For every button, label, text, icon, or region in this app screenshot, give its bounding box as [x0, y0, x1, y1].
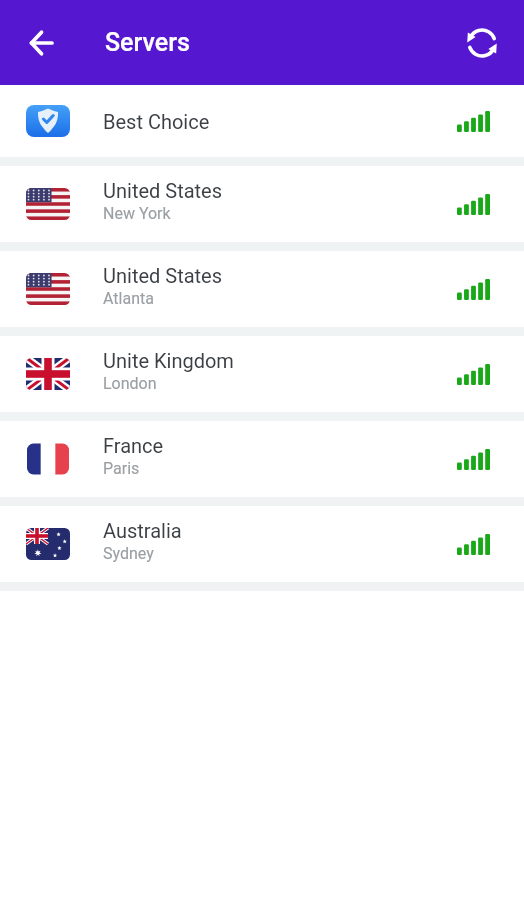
staticText: Unite Kingdom — [103, 349, 234, 372]
staticText: Paris — [103, 459, 140, 478]
button[interactable]: United States — [0, 251, 524, 327]
staticText: Australia — [103, 519, 182, 542]
staticText: Best Choice — [103, 110, 210, 133]
staticText: France — [103, 434, 164, 457]
button[interactable]: Unite Kingdom — [0, 336, 524, 412]
staticText: Sydney — [103, 544, 154, 563]
staticText: Atlanta — [103, 289, 154, 308]
staticText: Servers — [105, 28, 190, 57]
button[interactable]: France — [0, 421, 524, 497]
button[interactable]: Best Choice — [0, 85, 524, 157]
button[interactable]: United States — [0, 166, 524, 242]
staticText: New York — [103, 204, 171, 223]
staticText: United States — [103, 179, 223, 202]
staticText: United States — [103, 264, 223, 287]
button[interactable] — [18, 19, 66, 67]
staticText: London — [103, 374, 157, 393]
button[interactable] — [458, 19, 506, 67]
button[interactable]: Australia — [0, 506, 524, 582]
